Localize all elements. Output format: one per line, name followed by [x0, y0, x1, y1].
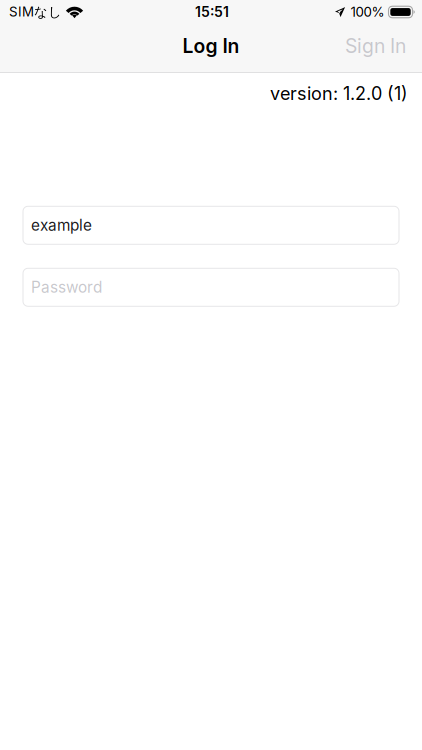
- staticText: Sign In: [345, 34, 406, 58]
- staticText: Log In: [182, 34, 239, 58]
- staticText: version: 1.2.0 (1): [270, 82, 408, 104]
- staticText: SIMなし: [9, 4, 62, 20]
- button[interactable]: Sign In: [327, 24, 422, 72]
- button[interactable]: example: [23, 206, 399, 244]
- staticText: 100%: [350, 4, 384, 20]
- staticText: Password: [31, 278, 102, 297]
- staticText: 15:51: [195, 3, 229, 20]
- staticText: example: [31, 216, 92, 235]
- button[interactable]: Password: [23, 268, 399, 306]
